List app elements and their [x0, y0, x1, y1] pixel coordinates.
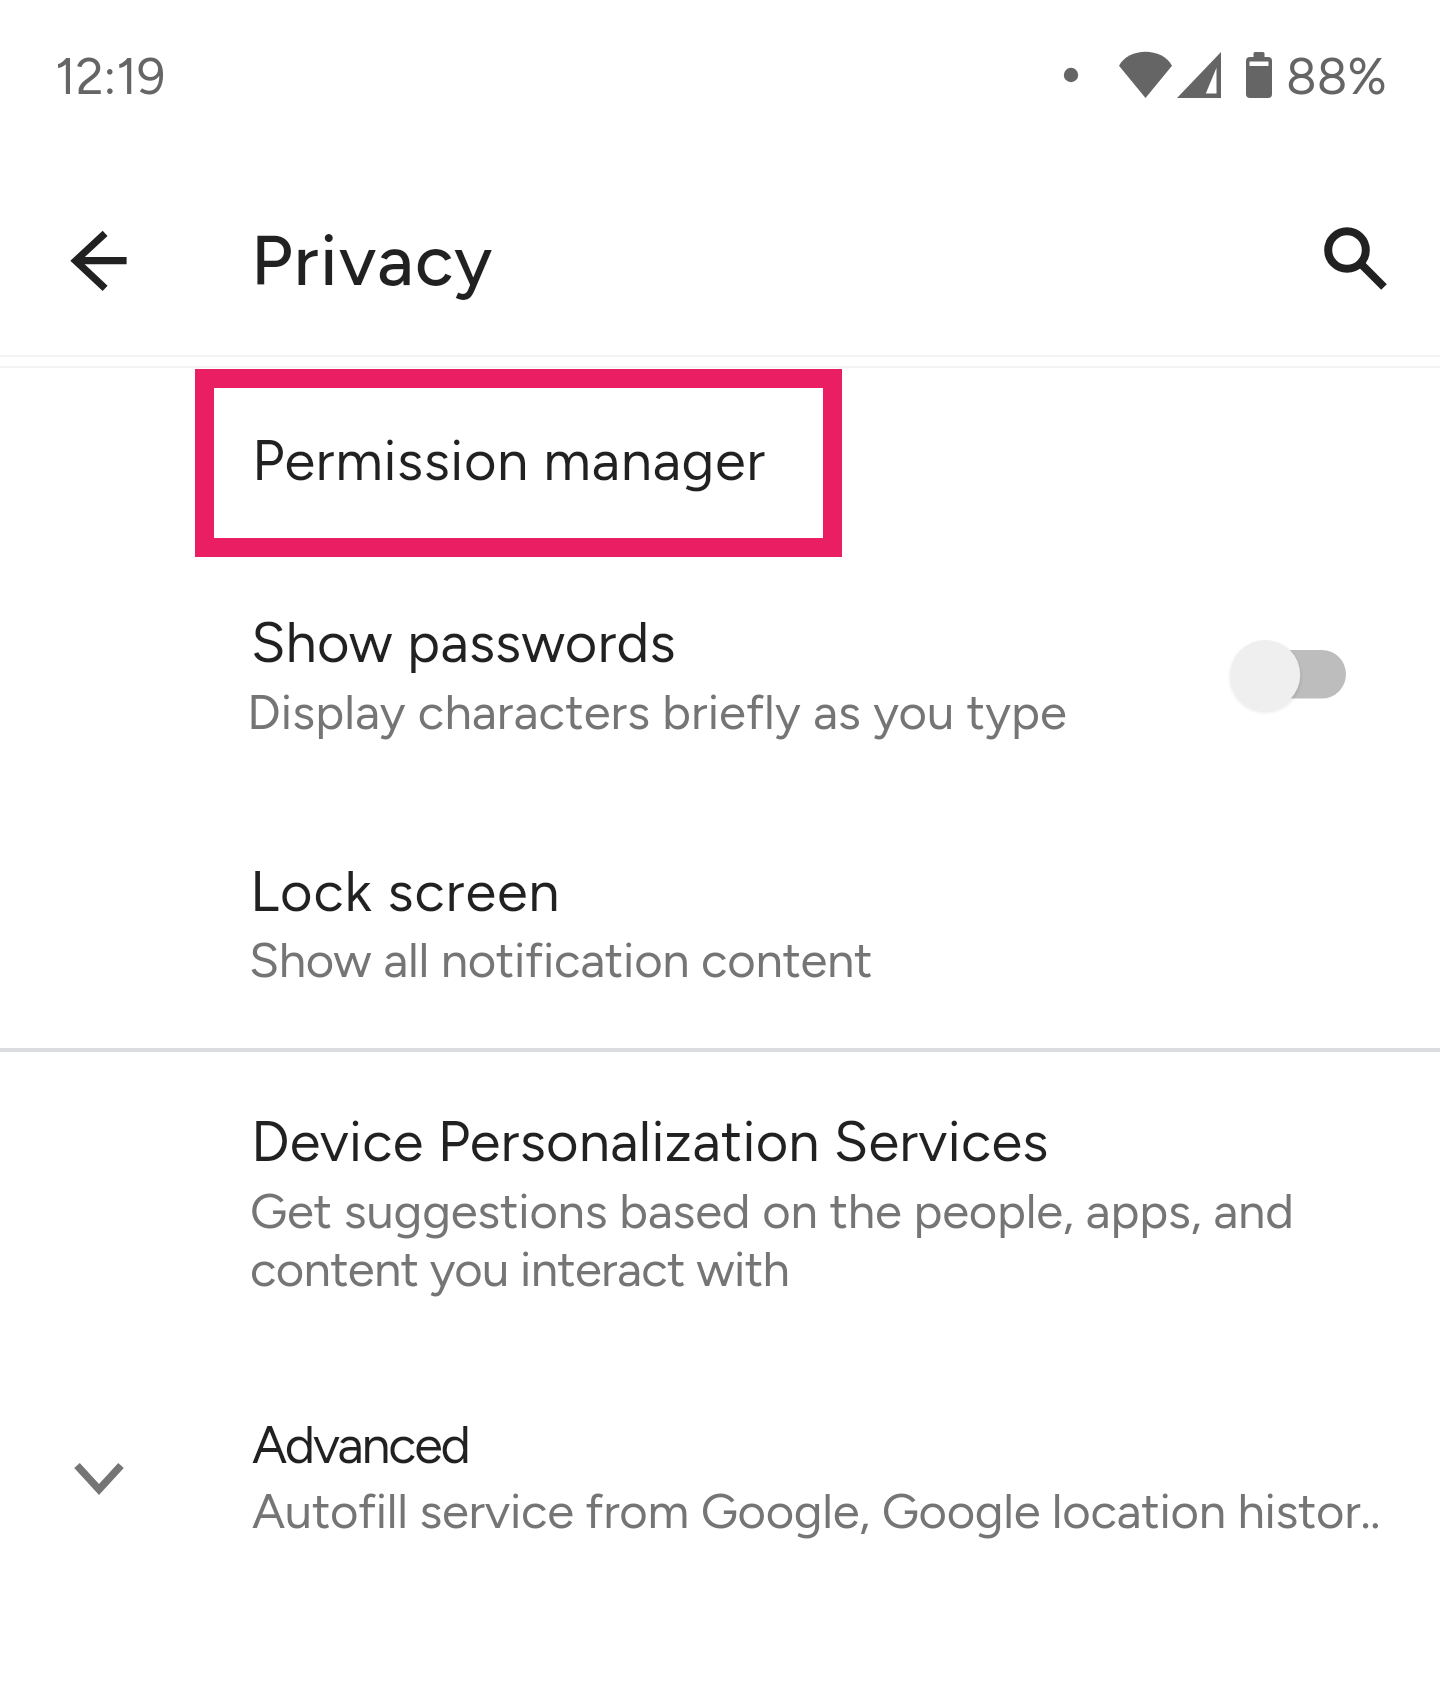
- staticText: 88%: [1286, 46, 1387, 106]
- button[interactable]: Search: [1277, 180, 1417, 320]
- staticText: Advanced: [252, 1414, 469, 1476]
- staticText: Privacy: [251, 218, 494, 303]
- button[interactable]: Advanced: [0, 1380, 1440, 1640]
- staticText: Show passwords: [251, 609, 676, 676]
- staticText: Autofill service from Google, Google loc…: [252, 1481, 1381, 1540]
- staticText: Show all notification content: [249, 930, 873, 989]
- button[interactable]: Device Personalization Services: [0, 1065, 1440, 1355]
- staticText: Permission manager: [252, 427, 766, 494]
- button[interactable]: Lock screen: [0, 814, 1440, 1034]
- staticText: Get suggestions based on the people, app…: [250, 1181, 1294, 1240]
- button[interactable]: Show passwords toggle, off: [1200, 620, 1375, 730]
- staticText: Device Personalization Services: [251, 1108, 1049, 1175]
- button[interactable]: Back: [28, 189, 168, 329]
- button[interactable]: Permission manager: [0, 369, 1440, 557]
- staticText: 12:19: [55, 46, 166, 106]
- button[interactable]: Show passwords: [0, 566, 1440, 786]
- staticText: content you interact with: [250, 1239, 790, 1298]
- staticText: Display characters briefly as you type: [247, 682, 1067, 741]
- staticText: Lock screen: [250, 858, 561, 925]
